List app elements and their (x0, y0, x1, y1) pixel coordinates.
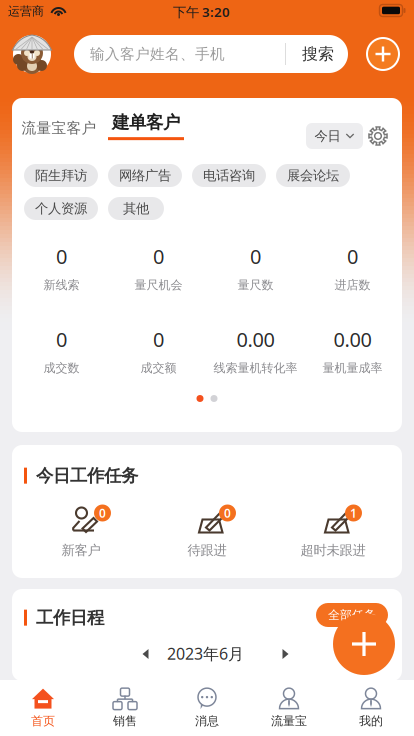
button[interactable]: 今日 (306, 123, 363, 149)
staticText: 0.00 (333, 326, 371, 353)
button[interactable]: 新增 (366, 37, 400, 71)
staticText: 流量宝客户 (21, 119, 96, 137)
staticText: 新线索 (43, 278, 79, 292)
staticText: 运营商 (8, 4, 44, 19)
staticText: 0 (99, 505, 106, 521)
button[interactable]: 0 (18, 503, 144, 558)
button[interactable]: 全部任务 (316, 603, 388, 627)
button[interactable]: 销售 (84, 682, 166, 734)
staticText: 输入客户姓名、手机 (90, 45, 225, 63)
staticText: 新客户 (61, 542, 100, 558)
button[interactable]: 展会论坛 (276, 164, 350, 187)
staticText: 全部任务 (328, 608, 376, 622)
staticText: 流量宝 (271, 714, 307, 728)
staticText: 电话咨询 (203, 167, 255, 184)
staticText: 网络广告 (119, 167, 171, 184)
button[interactable]: 建单客户 (106, 112, 186, 140)
button[interactable]: 陌生拜访 (24, 164, 98, 187)
button[interactable]: 其他 (108, 197, 164, 220)
staticText: 下午 3:20 (173, 3, 230, 21)
staticText: 0 (250, 243, 261, 270)
staticText: 量机量成率 (322, 361, 382, 375)
button[interactable]: 流量宝 (248, 682, 330, 734)
staticText: 1 (350, 505, 357, 521)
staticText: 0 (153, 243, 164, 270)
staticText: 量尺机会 (134, 278, 182, 292)
staticText: 量尺数 (237, 278, 273, 292)
staticText: 待跟进 (187, 542, 226, 558)
button[interactable]: 设置 (368, 126, 388, 146)
staticText: 工作日程 (36, 607, 104, 628)
button[interactable]: 首页 (2, 682, 84, 734)
button[interactable]: 我的 (330, 682, 412, 734)
button[interactable]: 个人中心 (12, 34, 52, 74)
staticText: 销售 (113, 714, 137, 728)
staticText: 我的 (359, 714, 383, 728)
button[interactable]: 下个月 (278, 646, 294, 662)
button[interactable]: 搜索 (288, 35, 348, 73)
staticText: 搜索 (302, 44, 334, 64)
staticText: 2023年6月 (167, 643, 244, 664)
staticText: 个人资源 (35, 200, 87, 217)
staticText: 0.00 (236, 326, 274, 353)
button[interactable]: 0 (144, 503, 270, 558)
button[interactable]: 新建 (333, 613, 395, 675)
staticText: 0 (56, 326, 67, 353)
staticText: 0 (224, 505, 231, 521)
staticText: 进店数 (334, 278, 370, 292)
staticText: 成交数 (43, 361, 79, 375)
staticText: 陌生拜访 (35, 167, 87, 184)
button[interactable]: 输入客户姓名、手机 (74, 35, 348, 73)
button[interactable]: 上个月 (138, 646, 154, 662)
staticText: 线索量机转化率 (213, 361, 297, 375)
staticText: 0 (56, 243, 67, 270)
staticText: 成交额 (140, 361, 176, 375)
staticText: 展会论坛 (287, 167, 339, 184)
staticText: 超时未跟进 (300, 542, 365, 558)
staticText: 0 (153, 326, 164, 353)
staticText: 建单客户 (112, 112, 180, 133)
button[interactable]: 流量宝客户 (22, 114, 96, 142)
staticText: 0 (347, 243, 358, 270)
staticText: 今日工作任务 (36, 465, 138, 486)
button[interactable]: 电话咨询 (192, 164, 266, 187)
button[interactable]: 网络广告 (108, 164, 182, 187)
staticText: 首页 (31, 714, 55, 728)
staticText: 消息 (195, 714, 219, 728)
button[interactable]: 1 (270, 503, 396, 558)
staticText: 今日 (314, 128, 340, 144)
staticText: 其他 (123, 200, 149, 217)
button[interactable]: 个人资源 (24, 197, 98, 220)
button[interactable]: 消息 (166, 682, 248, 734)
